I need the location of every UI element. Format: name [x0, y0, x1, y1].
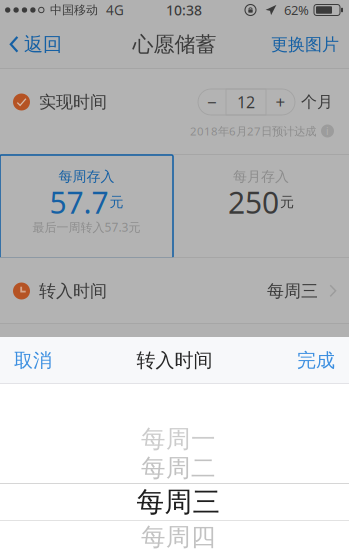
staticText: 10:38 — [166, 0, 202, 20]
staticText: 57.7 — [49, 182, 108, 222]
staticText: 心愿储蓄 — [132, 31, 216, 58]
staticText: 2018年6月27日预计达成 — [190, 123, 316, 139]
staticText: 250 — [228, 182, 279, 222]
staticText: 12 — [237, 91, 255, 113]
staticText: 个月 — [301, 92, 333, 112]
staticText: 4G — [106, 1, 124, 19]
staticText: 转入时间 — [39, 280, 107, 302]
button[interactable]: 取消 — [0, 337, 66, 384]
staticText: 元 — [109, 193, 123, 211]
staticText: i — [326, 124, 329, 138]
button[interactable]: Increase months — [266, 89, 295, 115]
staticText: 62% — [284, 1, 309, 19]
staticText: 实现时间 — [39, 91, 107, 113]
staticText: − — [207, 90, 217, 114]
staticText: 更换图片 — [271, 34, 339, 55]
button[interactable]: 返回 — [0, 20, 70, 69]
staticText: 每月存入 — [233, 168, 289, 185]
staticText: 每周三 — [267, 280, 318, 302]
staticText: 取消 — [14, 348, 52, 372]
staticText: 每周四 — [141, 522, 216, 552]
staticText: 中国移动 — [50, 2, 98, 17]
button[interactable]: 每周存入 — [0, 155, 173, 258]
staticText: + — [275, 90, 285, 114]
staticText: 每周二 — [141, 453, 216, 483]
button[interactable]: Decrease months — [198, 89, 226, 115]
button[interactable]: 每月存入 — [173, 155, 349, 258]
button[interactable]: 更换图片 — [263, 20, 349, 69]
button[interactable]: 完成 — [283, 337, 349, 384]
staticText: 转入时间 — [136, 348, 212, 372]
staticText: 每周三 — [136, 485, 220, 519]
button[interactable]: 转入时间 — [0, 258, 349, 324]
staticText: 元 — [280, 193, 294, 211]
staticText: 每周存入 — [58, 168, 114, 185]
staticText: 返回 — [24, 32, 62, 56]
staticText: 完成 — [297, 348, 335, 372]
staticText: 每周一 — [141, 424, 216, 454]
staticText: 最后一周转入57.3元 — [32, 219, 140, 235]
